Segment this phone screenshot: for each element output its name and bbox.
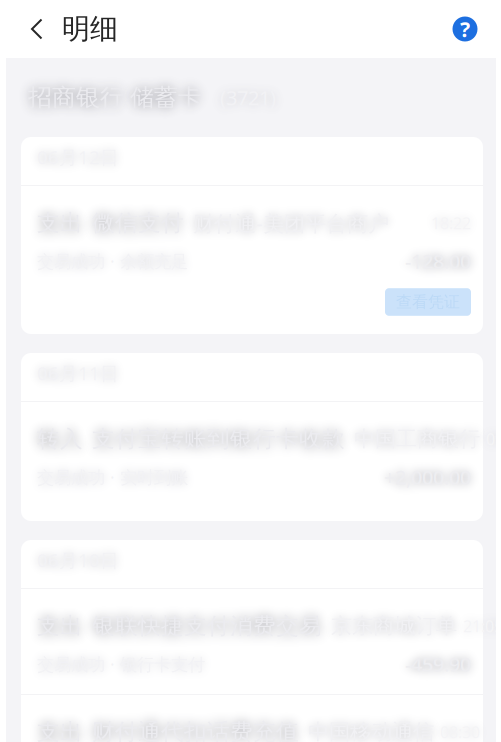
staticText: -128.00 xyxy=(405,248,471,274)
staticText: 08:30 xyxy=(440,721,480,742)
button[interactable]: 支出 xyxy=(21,186,483,334)
button[interactable]: 转入 xyxy=(21,402,483,507)
staticText: +2,000.00 xyxy=(384,464,471,490)
staticText: 转入 xyxy=(37,425,83,453)
staticText: 交易成功 · 余额充足 xyxy=(37,249,188,272)
staticText: 财付通-美团平台商户 xyxy=(193,209,389,237)
staticText: 微信支付 xyxy=(92,209,184,237)
staticText: 财付通代扣话费充值 xyxy=(92,718,299,742)
staticText: 支出 xyxy=(37,718,83,742)
staticText: 交易成功 · 实时到账 xyxy=(37,465,188,488)
button[interactable]: 支出 xyxy=(21,695,483,742)
staticText: 18:22 xyxy=(431,212,471,234)
staticText: 查看凭证 xyxy=(396,292,460,312)
staticText: 06月11日 xyxy=(37,361,119,385)
staticText: 支出 xyxy=(37,209,83,237)
staticText: 京东商城订单 xyxy=(331,613,457,639)
staticText: 06月10日 xyxy=(37,548,119,572)
button[interactable]: Help xyxy=(438,0,496,58)
staticText: -459.90 xyxy=(405,651,471,677)
staticText: 支付宝转账到银行卡收款 xyxy=(92,425,345,453)
staticText: 中国工商银行 xyxy=(354,426,480,452)
staticText: 09:47 xyxy=(486,428,501,450)
staticText: 银联快捷支付消费交易 xyxy=(92,612,322,640)
button[interactable]: 明细 xyxy=(6,0,132,58)
staticText: 21:05 xyxy=(463,615,501,637)
staticText: 支出 xyxy=(37,612,83,640)
staticText: 中国移动通信 xyxy=(308,719,434,742)
staticText: 06月12日 xyxy=(37,145,119,169)
staticText: 招商银行 xyxy=(28,83,124,112)
staticText: 明细 xyxy=(62,12,118,46)
button[interactable]: 支出 xyxy=(21,589,483,694)
staticText: ? xyxy=(460,15,470,43)
staticText: 交易成功 · 银行卡支付 xyxy=(37,652,205,675)
staticText: 储蓄卡 xyxy=(130,83,202,112)
